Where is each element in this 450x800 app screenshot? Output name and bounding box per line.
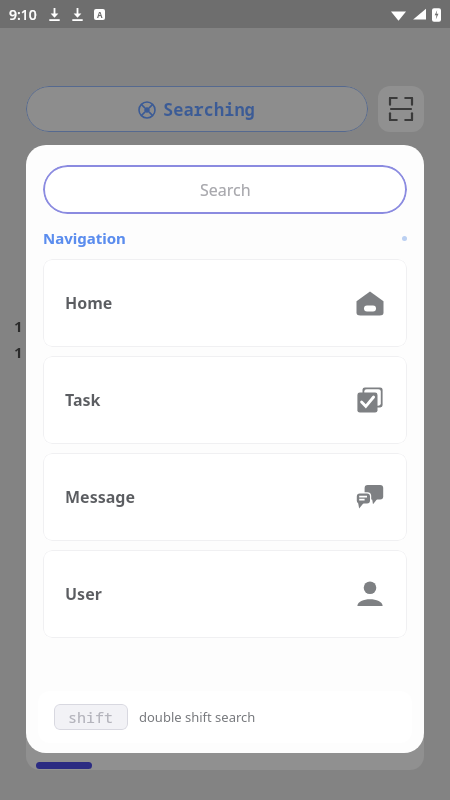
staticText: 1: [14, 316, 23, 336]
staticText: Navigation: [43, 228, 126, 248]
button[interactable]: Message: [43, 453, 407, 541]
staticText: Searching: [163, 98, 255, 121]
staticText: Task: [65, 389, 101, 411]
button[interactable]: User: [43, 550, 407, 638]
button[interactable]: shift: [38, 691, 412, 743]
staticText: 9:10: [9, 5, 37, 24]
staticText: 1: [14, 342, 23, 362]
staticText: 全关: [40, 738, 66, 754]
button[interactable]: Task: [43, 356, 407, 444]
staticText: Search: [200, 179, 251, 201]
button[interactable]: Searching: [26, 86, 368, 132]
staticText: double shift search: [139, 708, 256, 726]
button[interactable]: Scan: [378, 86, 424, 132]
staticText: Home: [65, 292, 113, 314]
staticText: 任务: [112, 738, 138, 754]
staticText: Message: [65, 486, 135, 508]
staticText: shift: [68, 707, 114, 727]
button[interactable]: Search: [43, 165, 407, 214]
button[interactable]: Home: [43, 259, 407, 347]
staticText: User: [65, 583, 102, 605]
staticText: A: [97, 9, 103, 20]
